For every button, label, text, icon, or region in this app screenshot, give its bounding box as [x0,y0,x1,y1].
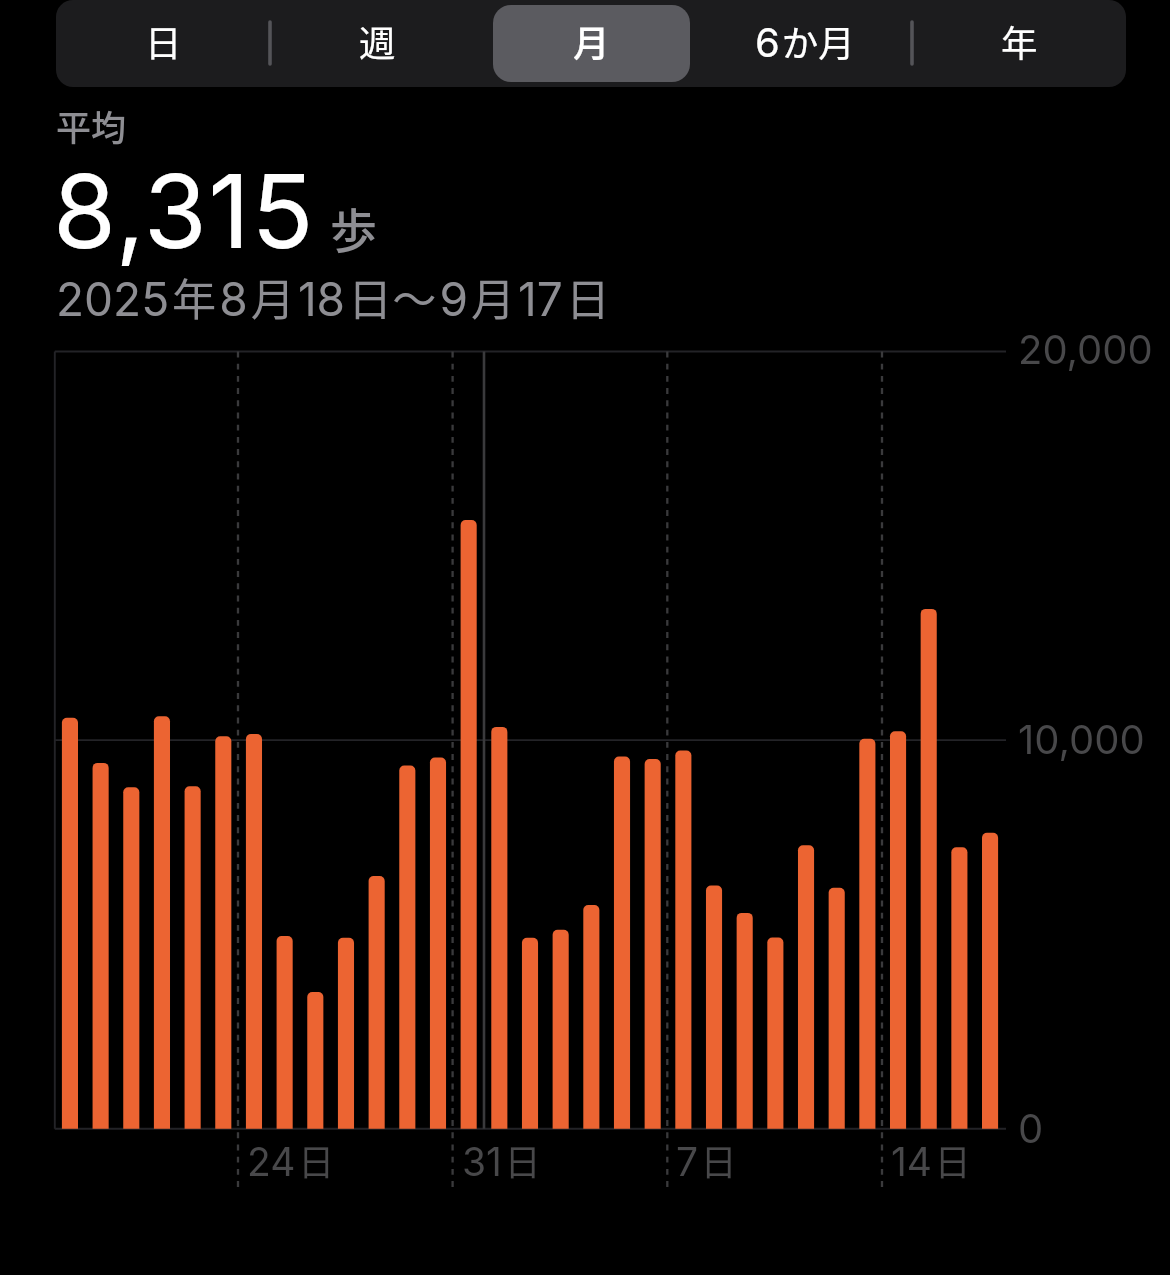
staticText: 31 日 [462,1134,541,1187]
staticText: 7 日 [676,1134,737,1187]
staticText: 6 か月 [755,15,855,68]
staticText: 年 [1001,15,1038,68]
staticText: 2025 年 8 月 18 日〜 9 月 17 日 [56,265,611,329]
staticText: 24 日 [247,1134,335,1187]
staticText: 8,315 [53,149,316,272]
staticText: 10,000 [1018,715,1145,763]
button[interactable]: 日 [56,0,270,87]
staticText: 0 [1018,1104,1044,1152]
staticText: 20,000 [1018,325,1153,373]
staticText: 日 [145,15,182,68]
button[interactable]: Steps bar chart [54,340,1014,1140]
staticText: 平均 [56,100,127,151]
staticText: 歩 [330,193,377,261]
button[interactable]: 月 [484,0,698,87]
staticText: 14 日 [891,1134,971,1187]
staticText: 週 [359,15,396,68]
staticText: 月 [573,15,610,68]
button[interactable]: 週 [270,0,484,87]
button[interactable]: 6 か月 [698,0,912,87]
button[interactable]: 年 [912,0,1126,87]
